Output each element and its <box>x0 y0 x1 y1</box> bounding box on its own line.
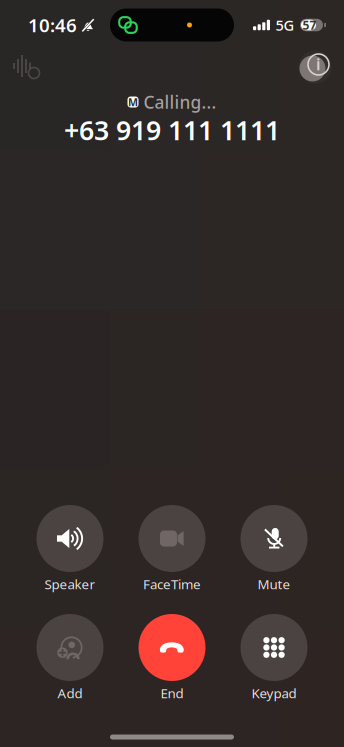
staticText: Speaker <box>44 575 95 593</box>
staticText: Add <box>57 684 82 702</box>
staticText: Calling... <box>143 90 216 113</box>
staticText: 10:46 <box>28 13 77 37</box>
button[interactable]: Keypad <box>228 614 320 700</box>
staticText: Mute <box>257 575 290 593</box>
button[interactable]: Speaker <box>24 505 116 591</box>
staticText: M <box>128 95 138 109</box>
button[interactable]: Call info <box>298 50 332 84</box>
staticText: FaceTime <box>143 575 201 593</box>
staticText: Keypad <box>251 684 296 702</box>
staticText: 57 <box>302 17 316 33</box>
staticText: 5G <box>275 15 294 35</box>
button[interactable]: FaceTime <box>126 505 218 591</box>
button[interactable]: End <box>126 614 218 700</box>
staticText: End <box>160 684 183 702</box>
staticText: +63 919 111 1111 <box>64 112 280 148</box>
button[interactable]: Add <box>24 614 116 700</box>
staticText: i <box>316 53 321 75</box>
button[interactable]: Mute <box>228 505 320 591</box>
